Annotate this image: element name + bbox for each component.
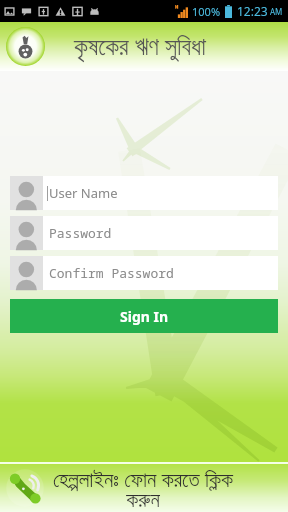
staticText: AM: [270, 6, 283, 17]
staticText: হেল্পলাইনঃ ফোন করতে ক্লিক করুন: [45, 465, 241, 512]
button[interactable]: App logo: [6, 27, 45, 66]
button[interactable]: User Name: [10, 176, 278, 210]
button[interactable]: Confirm Password: [10, 256, 278, 290]
staticText: 100%: [192, 4, 221, 19]
button[interactable]: Call helpline: [0, 464, 288, 512]
staticText: User Name: [49, 184, 118, 202]
staticText: Confirm Password: [49, 264, 174, 282]
staticText: Password: [49, 224, 112, 242]
staticText: Sign In: [120, 307, 169, 326]
button[interactable]: Sign In: [10, 299, 278, 333]
staticText: কৃষকের ঋণ সুবিধা: [74, 29, 206, 62]
other: Call helpline: [5, 468, 45, 508]
staticText: 12:23: [237, 3, 268, 19]
button[interactable]: Password: [10, 216, 278, 250]
